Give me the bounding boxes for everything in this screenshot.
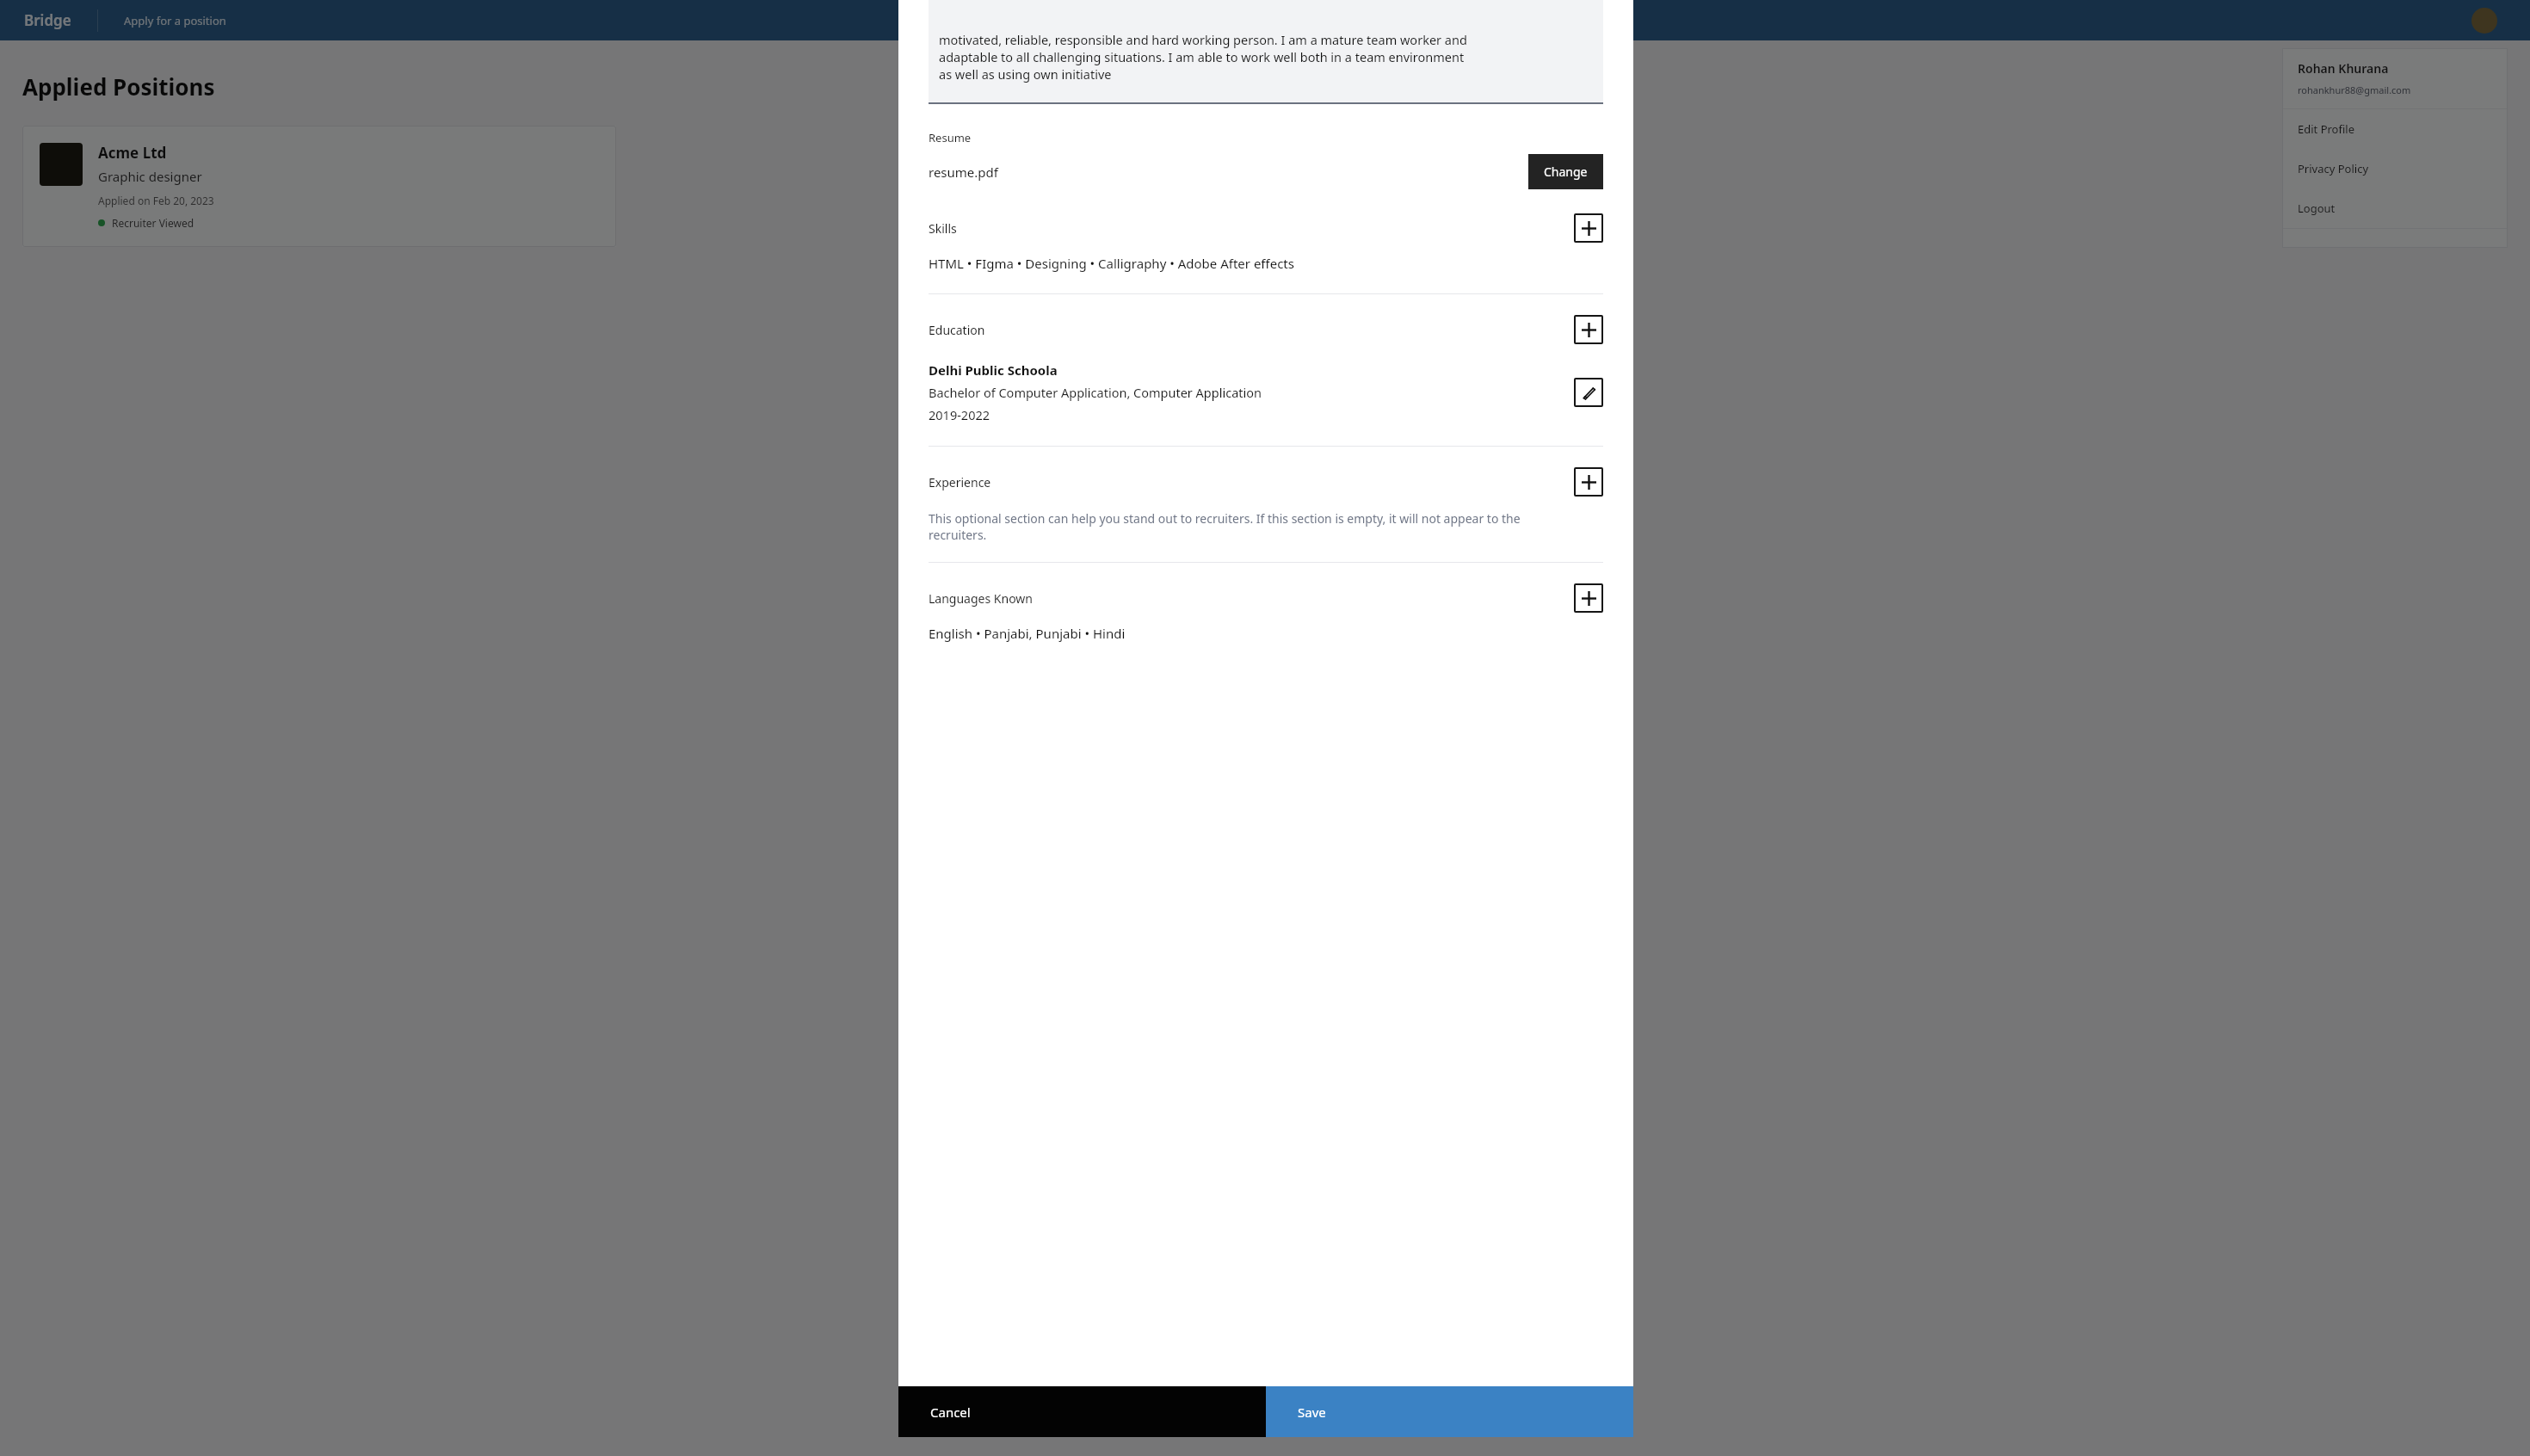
button[interactable]: Add language [1574,583,1603,613]
button[interactable]: Apply for a position [124,13,226,28]
staticText: Privacy Policy [2298,161,2369,176]
staticText: Resume [929,130,972,145]
staticText: motivated, reliable, responsible and har… [939,31,1467,48]
staticText: Applied Positions [22,71,215,102]
staticText: Bachelor of Computer Application, Comput… [929,384,1262,401]
staticText: This optional section can help you stand… [929,510,1521,527]
staticText: Change [1544,163,1588,180]
staticText: Save [1298,1404,1326,1421]
button[interactable]: Account [2471,8,2497,34]
staticText: 2019-2022 [929,406,990,423]
staticText: Logout [2298,201,2336,216]
button[interactable]: Cancel [898,1386,1266,1437]
button[interactable]: Privacy Policy [2282,149,2508,188]
staticText: resume.pdf [929,163,1528,181]
staticText: Acme Ltd [98,143,167,163]
staticText: Languages Known [929,590,1574,607]
staticText: Delhi Public Schoola [929,361,1058,379]
button[interactable]: Save [1266,1386,1633,1437]
button[interactable]: Rohan Khurana [2282,48,2508,248]
staticText: Experience [929,474,1574,490]
staticText: Edit Profile [2298,121,2355,137]
staticText: HTML • FIgma • Designing • Calligraphy •… [929,255,1294,272]
staticText: Graphic designer [98,168,202,185]
staticText: Applied on Feb 20, 2023 [98,194,214,207]
button[interactable]: Add education [1574,315,1603,344]
staticText: Rohan Khurana [2298,60,2389,77]
button[interactable]: Edit Profile [2282,109,2508,149]
staticText: English • Panjabi, Punjabi • Hindi [929,625,1126,642]
staticText: Skills [929,220,1574,237]
button[interactable]: Logout [2282,188,2508,228]
button[interactable]: Change [1528,154,1603,189]
button[interactable]: Add experience [1574,467,1603,497]
staticText: rohankhur88@gmail.com [2298,83,2411,96]
button[interactable]: Bridge [24,10,71,30]
staticText: Cancel [930,1404,971,1421]
button[interactable]: Edit education [1574,378,1603,407]
staticText: recruiters. [929,527,987,543]
staticText: as well as using own initiative [939,65,1112,83]
button[interactable]: Add skill [1574,213,1603,243]
staticText: Recruiter Viewed [112,216,194,230]
staticText: Education [929,322,1574,338]
staticText: adaptable to all challenging situations.… [939,48,1465,65]
button[interactable]: Acme Ltd [22,126,616,247]
